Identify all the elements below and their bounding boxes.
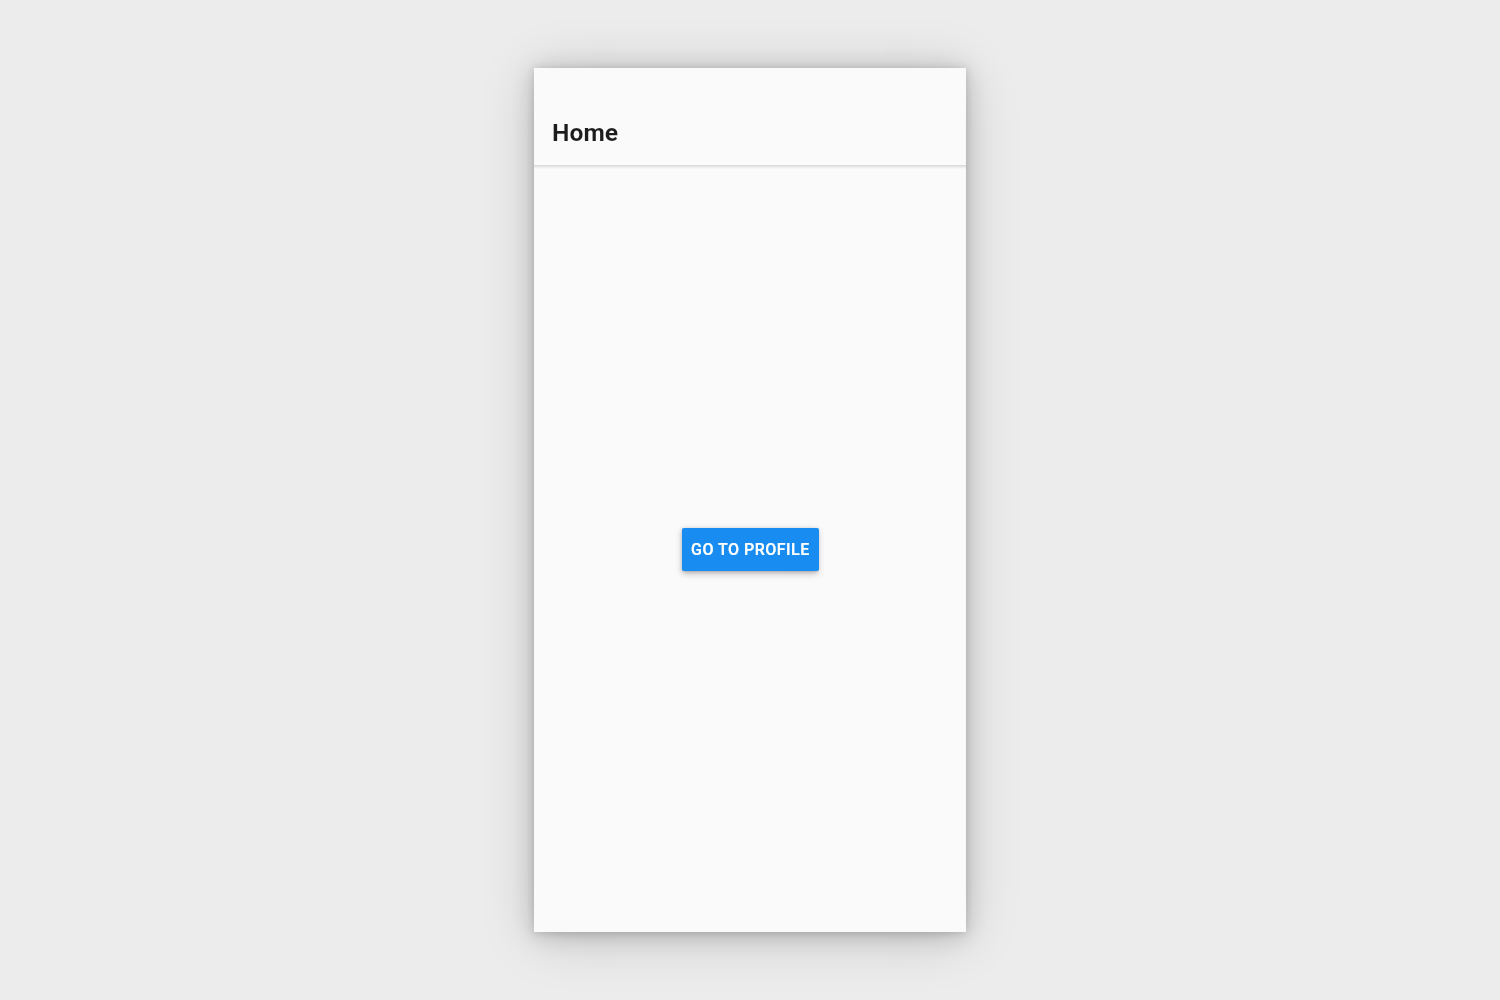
staticText: GO TO PROFILE	[691, 540, 810, 559]
staticText: Home	[552, 118, 619, 147]
button[interactable]: GO TO PROFILE	[682, 528, 819, 571]
